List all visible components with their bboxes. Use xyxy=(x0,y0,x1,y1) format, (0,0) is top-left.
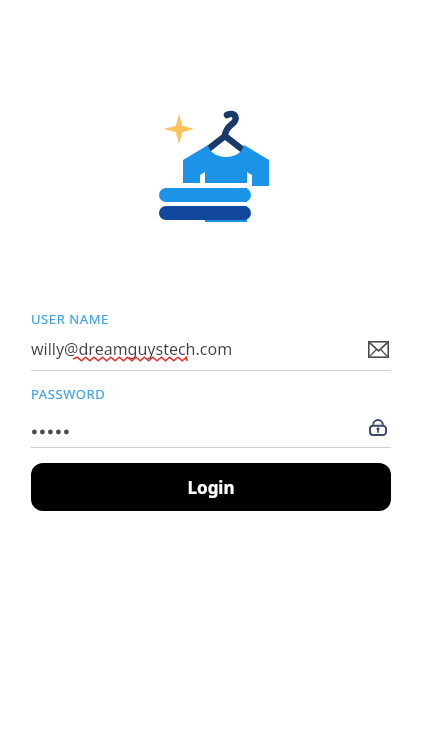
staticText: Login xyxy=(187,476,235,499)
staticText: USER NAME xyxy=(31,310,109,328)
button[interactable]: Toggle password visibility xyxy=(365,413,391,439)
button[interactable]: Email xyxy=(365,336,391,362)
button[interactable]: Login xyxy=(31,463,391,511)
staticText: willy@dreamguystech.com xyxy=(31,338,233,360)
staticText: PASSWORD xyxy=(31,385,106,403)
